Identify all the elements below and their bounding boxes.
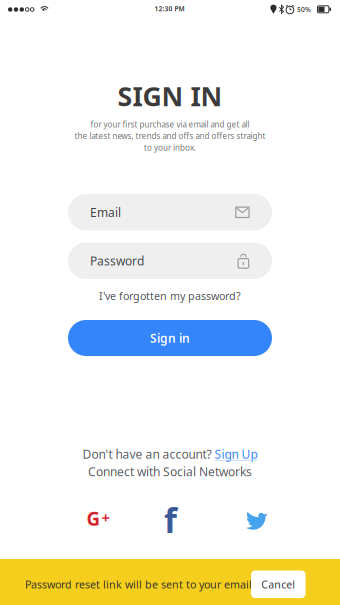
staticText: for your first purchase via email and ge… bbox=[90, 119, 249, 130]
staticText: Cancel bbox=[261, 577, 295, 591]
button[interactable]: Email bbox=[68, 194, 272, 231]
staticText: Password bbox=[90, 253, 144, 269]
staticText: SIGN IN bbox=[117, 78, 222, 114]
staticText: Sign in bbox=[150, 330, 190, 346]
staticText: I've forgotten my password? bbox=[99, 289, 241, 303]
button[interactable]: Sign in with Google bbox=[86, 506, 109, 531]
button[interactable]: Sign in with Facebook bbox=[164, 498, 177, 542]
staticText: 50% bbox=[297, 5, 311, 14]
button[interactable]: Sign Up bbox=[214, 446, 257, 462]
staticText: Password reset link will be sent to your… bbox=[25, 577, 252, 591]
button[interactable]: Sign in bbox=[68, 320, 272, 356]
staticText: the latest news, trends and offs and off… bbox=[74, 131, 265, 141]
button[interactable]: Password bbox=[68, 243, 272, 279]
staticText: Sign Up bbox=[214, 446, 257, 462]
staticText: + bbox=[101, 508, 109, 527]
button[interactable]: Sign in with Twitter bbox=[246, 510, 268, 530]
staticText: G bbox=[86, 506, 100, 531]
staticText: Email bbox=[90, 204, 121, 220]
staticText: f bbox=[164, 498, 177, 542]
staticText: Connect with Social Networks bbox=[88, 463, 252, 479]
staticText: Don't have an account? bbox=[82, 446, 211, 462]
button[interactable]: Cancel bbox=[251, 570, 306, 598]
staticText: to your inbox. bbox=[144, 142, 196, 153]
staticText: 12:30 PM bbox=[154, 4, 184, 13]
button[interactable]: I've forgotten my password? bbox=[99, 289, 241, 303]
